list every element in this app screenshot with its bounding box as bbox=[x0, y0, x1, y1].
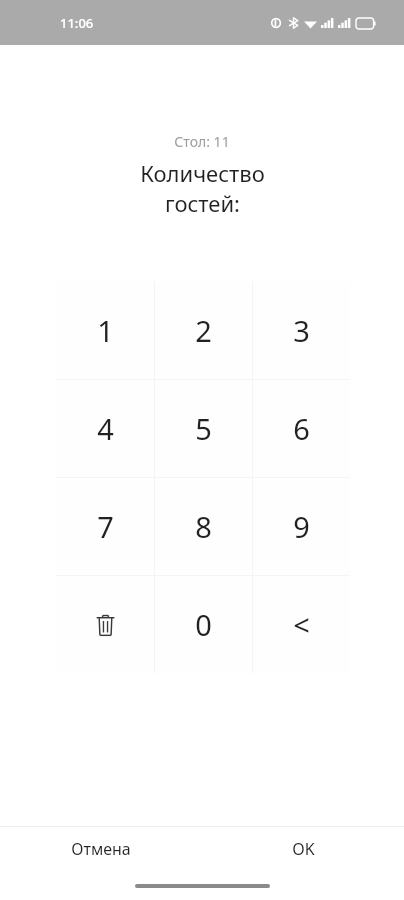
staticText: Количество гостей: bbox=[140, 158, 265, 218]
button[interactable]: < bbox=[253, 576, 350, 673]
staticText: Отмена bbox=[71, 838, 131, 860]
button[interactable]: Delete bbox=[56, 576, 154, 673]
staticText: 0 bbox=[195, 605, 212, 644]
button[interactable]: 3 bbox=[253, 281, 350, 379]
staticText: 1 bbox=[97, 311, 114, 350]
button[interactable]: 1 bbox=[56, 281, 154, 379]
staticText: 7 bbox=[97, 507, 114, 546]
staticText: 8 bbox=[195, 507, 212, 546]
staticText: < bbox=[293, 605, 310, 644]
button[interactable]: 2 bbox=[155, 281, 252, 379]
staticText: 6 bbox=[293, 409, 310, 448]
button[interactable]: 8 bbox=[155, 478, 252, 575]
button[interactable]: 9 bbox=[253, 478, 350, 575]
button[interactable]: Отмена bbox=[0, 827, 202, 871]
staticText: 2 bbox=[195, 311, 212, 350]
button[interactable]: 5 bbox=[155, 380, 252, 477]
staticText: 11:06 bbox=[60, 14, 94, 32]
button[interactable]: 7 bbox=[56, 478, 154, 575]
button[interactable]: 6 bbox=[253, 380, 350, 477]
staticText: 3 bbox=[293, 311, 310, 350]
button[interactable]: 0 bbox=[155, 576, 252, 673]
staticText: 5 bbox=[195, 409, 212, 448]
staticText: OK bbox=[292, 838, 315, 860]
staticText: 9 bbox=[293, 507, 310, 546]
staticText: Стол: 11 bbox=[174, 132, 230, 151]
button[interactable]: 4 bbox=[56, 380, 154, 477]
button[interactable]: OK bbox=[202, 827, 404, 871]
staticText: 4 bbox=[97, 409, 114, 448]
